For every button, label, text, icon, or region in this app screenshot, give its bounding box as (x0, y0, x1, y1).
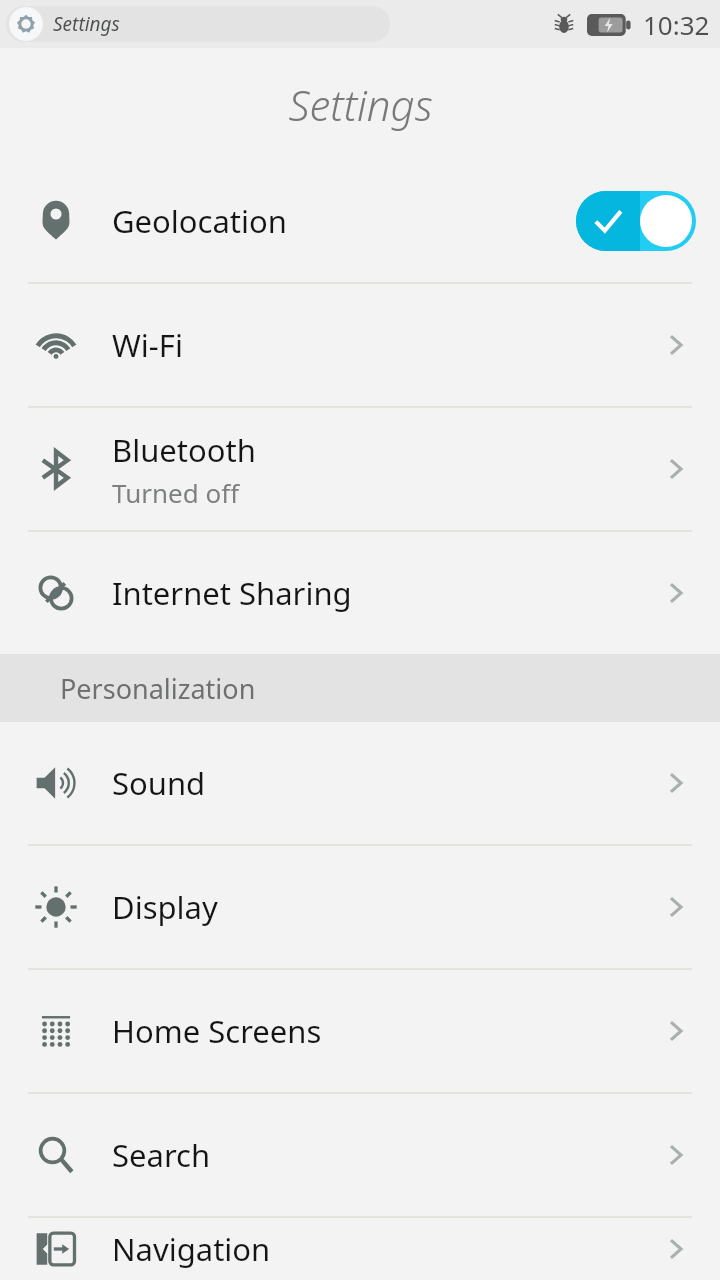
staticText: Settings (53, 11, 120, 37)
staticText: Display (112, 886, 218, 928)
button[interactable]: Internet Sharing (0, 532, 720, 654)
button[interactable]: Navigation (0, 1218, 720, 1280)
staticText: Turned off (112, 475, 240, 510)
staticText: Geolocation (112, 200, 287, 242)
staticText: Sound (112, 762, 206, 804)
button[interactable]: Sound (0, 722, 720, 844)
staticText: Internet Sharing (112, 572, 352, 614)
button[interactable]: Wi-Fi (0, 284, 720, 406)
button[interactable]: Home Screens (0, 970, 720, 1092)
staticText: Wi-Fi (112, 324, 183, 366)
staticText: Personalization (60, 670, 256, 707)
button[interactable]: Geolocation (0, 160, 720, 282)
staticText: Bluetooth (112, 429, 256, 471)
staticText: Home Screens (112, 1010, 322, 1052)
button[interactable]: Bluetooth (0, 408, 720, 530)
staticText: 10:32 (643, 7, 710, 42)
button[interactable]: Display (0, 846, 720, 968)
button[interactable]: Settings (6, 6, 390, 42)
button[interactable]: Search (0, 1094, 720, 1216)
staticText: Navigation (112, 1228, 271, 1270)
staticText: Search (112, 1134, 211, 1176)
button[interactable]: Geolocation toggle, on (576, 191, 696, 251)
staticText: Settings (288, 76, 433, 133)
